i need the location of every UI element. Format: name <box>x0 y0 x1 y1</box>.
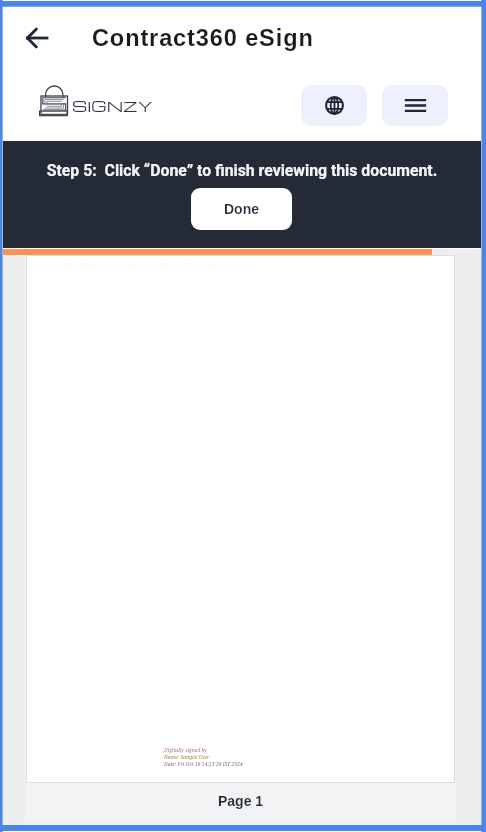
button[interactable]: Language <box>301 85 367 126</box>
button[interactable]: Menu <box>382 85 448 126</box>
staticText: Contract360 eSign <box>92 25 314 51</box>
staticText: Date: Fri Oct 18 14:25:39 IST 2024 <box>164 761 243 768</box>
button[interactable]: Back <box>21 22 52 53</box>
button[interactable]: Done <box>191 188 292 230</box>
staticText: Done <box>224 201 259 217</box>
staticText: Digitally signed by <box>164 747 207 754</box>
staticText: Name: Sample User <box>164 754 210 761</box>
staticText: SIGNZY <box>72 95 153 116</box>
staticText: Page 1 <box>218 793 264 809</box>
staticText: Step 5: Click “Done” to finish reviewing… <box>3 161 481 180</box>
